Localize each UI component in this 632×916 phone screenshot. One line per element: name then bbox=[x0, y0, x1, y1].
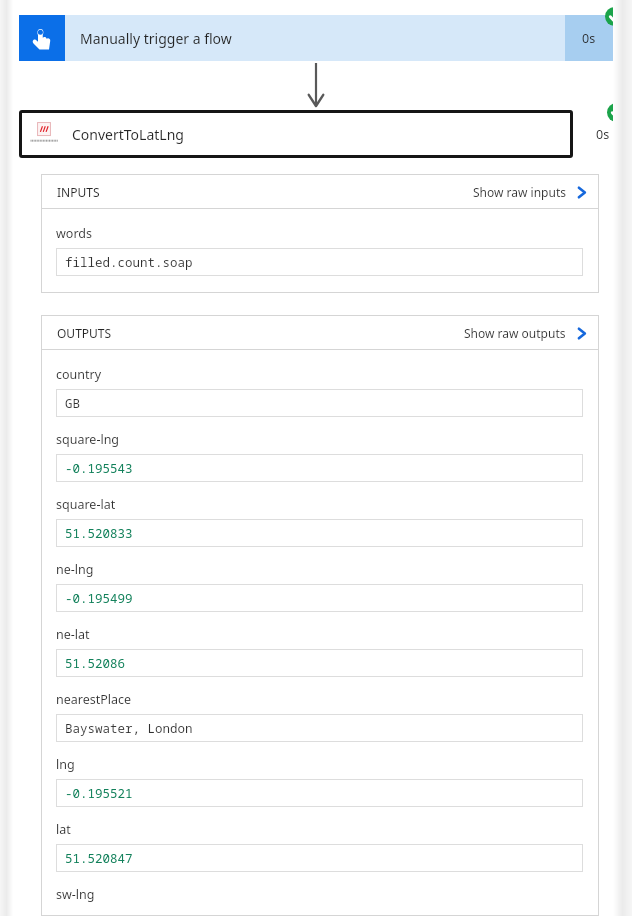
button[interactable]: 51.52086 bbox=[56, 649, 583, 677]
staticText: Show raw inputs bbox=[473, 184, 566, 200]
staticText: Show raw outputs bbox=[464, 325, 566, 341]
button[interactable]: 51.520847 bbox=[56, 844, 583, 872]
staticText: square-lat bbox=[56, 496, 116, 513]
button[interactable]: 51.520833 bbox=[56, 519, 583, 547]
staticText: INPUTS bbox=[57, 184, 100, 200]
staticText: 51.520847 bbox=[65, 850, 133, 867]
staticText: Manually trigger a flow bbox=[80, 29, 232, 48]
staticText: ne-lng bbox=[56, 561, 94, 578]
button[interactable]: -0.195543 bbox=[56, 454, 583, 482]
button[interactable]: Bayswater, London bbox=[56, 714, 583, 742]
button[interactable]: Show raw inputs bbox=[465, 184, 599, 200]
staticText: 0s bbox=[582, 30, 596, 47]
staticText: 0s bbox=[596, 126, 610, 143]
staticText: -0.195543 bbox=[65, 460, 133, 477]
staticText: -0.195521 bbox=[65, 785, 133, 802]
staticText: 51.52086 bbox=[65, 655, 126, 672]
staticText: sw-lng bbox=[56, 886, 95, 902]
staticText: square-lng bbox=[56, 431, 120, 448]
staticText: lng bbox=[56, 756, 75, 773]
button[interactable]: Show raw outputs bbox=[456, 325, 599, 341]
staticText: country bbox=[56, 366, 102, 383]
staticText: Bayswater, London bbox=[65, 720, 193, 737]
staticText: nearestPlace bbox=[56, 691, 132, 708]
staticText: 51.520833 bbox=[65, 525, 133, 542]
button[interactable]: Manually trigger a flow bbox=[19, 15, 613, 61]
staticText: filled.count.soap bbox=[65, 254, 193, 271]
staticText: ConvertToLatLng bbox=[72, 125, 184, 144]
button[interactable]: -0.195521 bbox=[56, 779, 583, 807]
staticText: OUTPUTS bbox=[57, 325, 112, 341]
staticText: lat bbox=[56, 821, 71, 838]
button[interactable]: ConvertToLatLng bbox=[19, 110, 573, 158]
staticText: ne-lat bbox=[56, 626, 90, 643]
staticText: GB bbox=[65, 395, 81, 412]
staticText: -0.195499 bbox=[65, 590, 133, 607]
button[interactable]: -0.195499 bbox=[56, 584, 583, 612]
staticText: words bbox=[56, 225, 92, 242]
button[interactable]: filled.count.soap bbox=[56, 248, 583, 276]
button[interactable]: GB bbox=[56, 389, 583, 417]
